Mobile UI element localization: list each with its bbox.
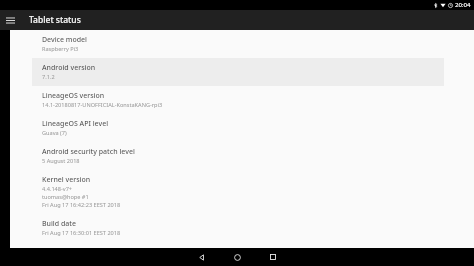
staticText: LineageOS version bbox=[42, 91, 105, 101]
button[interactable]: Device model bbox=[32, 30, 444, 58]
staticText: tuomas@hope #1 bbox=[42, 193, 89, 201]
staticText: Kernel version bbox=[42, 175, 91, 185]
staticText: Fri Aug 17 16:30:01 EEST 2018 bbox=[42, 229, 121, 237]
button[interactable]: Android security patch level bbox=[32, 142, 444, 170]
button[interactable]: Home bbox=[219, 248, 255, 266]
staticText: Guava (7) bbox=[42, 129, 67, 137]
staticText: Device model bbox=[42, 35, 88, 45]
staticText: LineageOS API level bbox=[42, 119, 109, 129]
button[interactable]: Back bbox=[183, 248, 219, 266]
staticText: 14.1-20180817-UNOFFICIAL-KonstaKANG-rpi3 bbox=[42, 101, 163, 109]
button[interactable]: Kernel version bbox=[32, 170, 444, 214]
staticText: Android version bbox=[42, 63, 96, 73]
staticText: 7.1.2 bbox=[42, 73, 55, 81]
button[interactable]: Build date bbox=[32, 214, 444, 242]
button[interactable]: LineageOS version bbox=[32, 86, 444, 114]
button[interactable]: Recent apps bbox=[255, 248, 291, 266]
staticText: 5 August 2018 bbox=[42, 157, 80, 165]
staticText: Tablet status bbox=[29, 14, 81, 26]
staticText: 20:04 bbox=[455, 1, 471, 9]
staticText: Android security patch level bbox=[42, 147, 135, 157]
staticText: Build date bbox=[42, 219, 76, 229]
button[interactable]: LineageOS API level bbox=[32, 114, 444, 142]
staticText: 4.4.148-v7+ bbox=[42, 185, 73, 193]
staticText: Fri Aug 17 16:42:23 EEST 2018 bbox=[42, 201, 121, 209]
button[interactable]: Open navigation drawer bbox=[0, 10, 20, 30]
button[interactable]: Android version bbox=[32, 58, 444, 86]
staticText: Raspberry Pi3 bbox=[42, 45, 79, 53]
